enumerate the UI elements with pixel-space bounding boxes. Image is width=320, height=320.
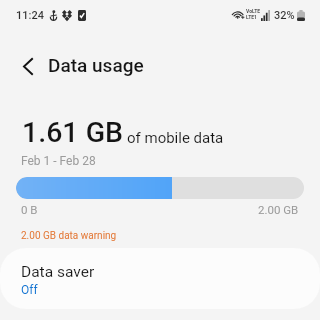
staticText: VoLTE bbox=[246, 8, 261, 14]
staticText: LTE1 bbox=[246, 14, 257, 20]
staticText: 0 B bbox=[21, 203, 38, 216]
staticText: 1.61 GB bbox=[22, 116, 124, 149]
staticText: Feb 1 - Feb 28 bbox=[21, 154, 96, 168]
staticText: 2.00 GB data warning bbox=[21, 230, 117, 242]
staticText: Off bbox=[21, 283, 38, 297]
button[interactable]: Navigate up bbox=[11, 50, 44, 83]
staticText: of mobile data bbox=[127, 129, 224, 147]
staticText: Data usage bbox=[48, 54, 144, 76]
staticText: 32% bbox=[274, 9, 295, 22]
button[interactable]: Data saver bbox=[0, 248, 320, 309]
staticText: Data saver bbox=[21, 263, 95, 281]
staticText: 2.00 GB bbox=[258, 203, 299, 216]
staticText: 11:24 bbox=[16, 9, 44, 22]
